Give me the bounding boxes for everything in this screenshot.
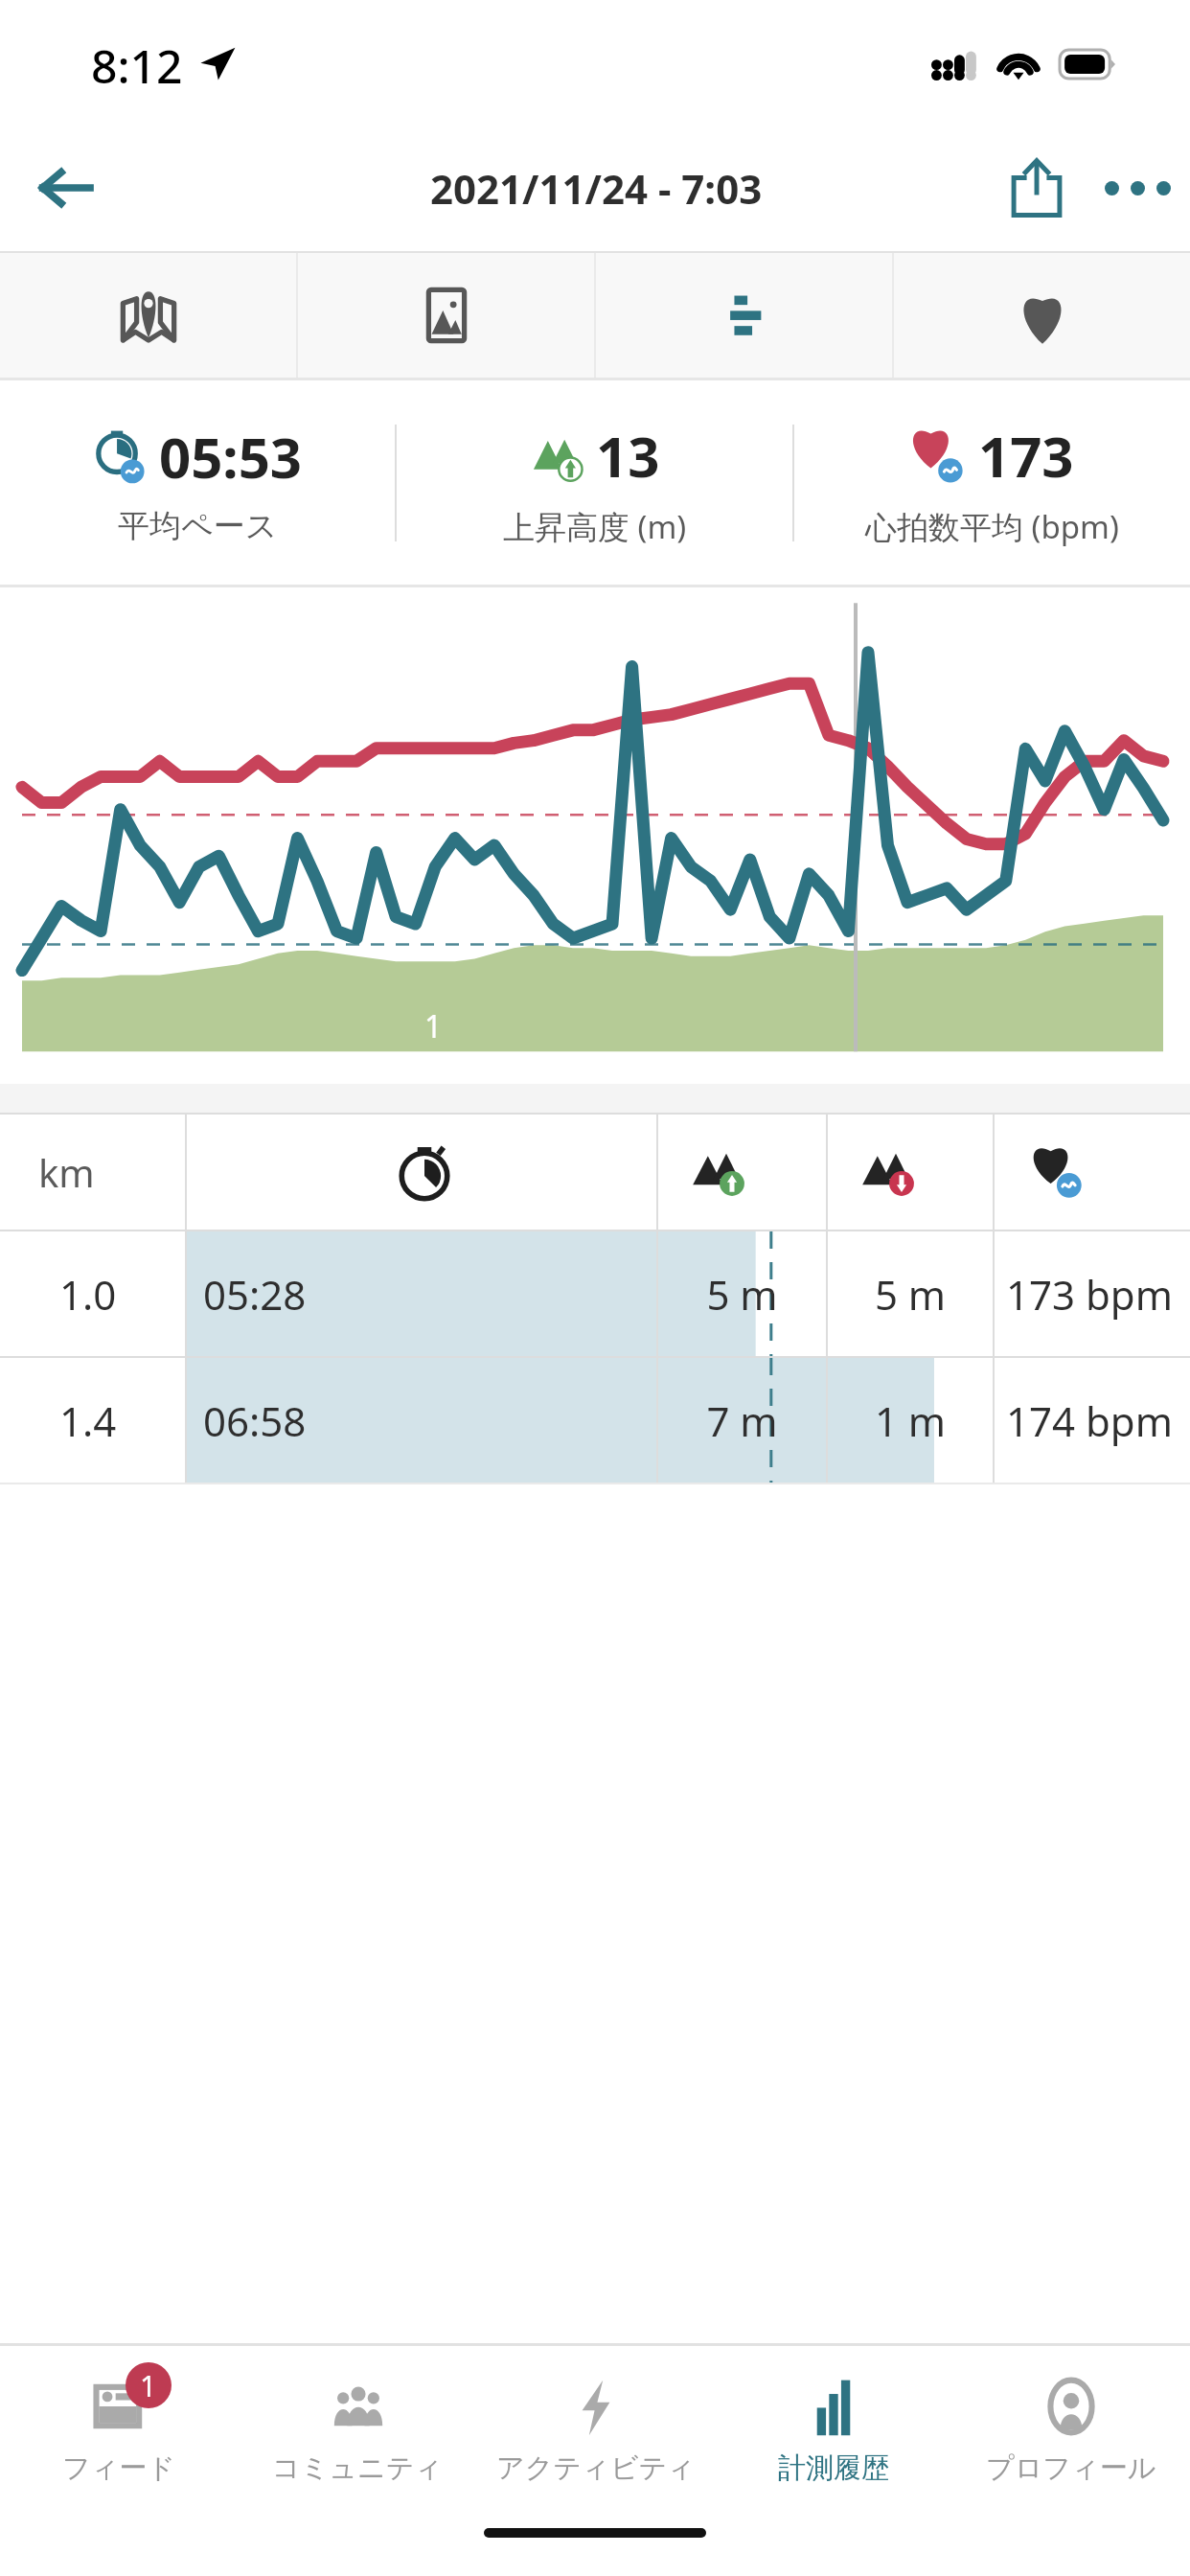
- button[interactable]: 1.0: [0, 1231, 1190, 1356]
- staticText: 1: [424, 1005, 443, 1047]
- staticText: 174 bpm: [994, 1393, 1185, 1448]
- staticText: 06:58: [203, 1393, 307, 1448]
- button[interactable]: Graph: [596, 253, 892, 378]
- staticText: 05:53: [159, 419, 303, 494]
- staticText: 計測履歴: [778, 2450, 889, 2486]
- button[interactable]: 173: [794, 380, 1190, 585]
- button[interactable]: コミュニティ: [239, 2346, 477, 2511]
- staticText: 心拍数平均 (bpm): [865, 505, 1119, 548]
- button[interactable]: Map: [0, 253, 296, 378]
- button[interactable]: 計測履歴: [715, 2346, 952, 2511]
- button[interactable]: Share: [989, 140, 1085, 236]
- button[interactable]: More options: [1085, 135, 1190, 241]
- button[interactable]: Heart rate: [894, 253, 1190, 378]
- staticText: コミュニティ: [272, 2450, 444, 2486]
- button[interactable]: 05:53: [0, 380, 395, 585]
- staticText: プロフィール: [986, 2450, 1156, 2486]
- staticText: 05:28: [203, 1267, 307, 1322]
- button[interactable]: Photos: [298, 253, 594, 378]
- button[interactable]: 1: [0, 2346, 239, 2511]
- staticText: 13: [596, 418, 660, 494]
- staticText: 5 m: [657, 1267, 827, 1322]
- staticText: 1.0: [59, 1267, 117, 1322]
- staticText: 1.4: [59, 1393, 117, 1448]
- staticText: フィード: [62, 2450, 176, 2486]
- button[interactable]: 1: [0, 587, 1190, 1084]
- button[interactable]: プロフィール: [952, 2346, 1190, 2511]
- staticText: 上昇高度 (m): [503, 505, 687, 548]
- staticText: 8:12: [91, 34, 183, 97]
- staticText: 173: [978, 418, 1074, 494]
- button[interactable]: アクティビティ: [477, 2346, 715, 2511]
- staticText: 7 m: [657, 1393, 827, 1448]
- button[interactable]: 1.4: [0, 1358, 1190, 1483]
- staticText: アクティビティ: [496, 2450, 696, 2486]
- staticText: 2021/11/24 - 7:03: [430, 161, 763, 216]
- staticText: 1 m: [827, 1393, 994, 1448]
- staticText: 173 bpm: [994, 1267, 1185, 1322]
- staticText: 平均ペース: [118, 506, 278, 546]
- staticText: km: [38, 1146, 95, 1198]
- staticText: 1: [140, 2366, 157, 2405]
- button[interactable]: Back: [19, 142, 111, 234]
- staticText: 5 m: [827, 1267, 994, 1322]
- button[interactable]: 13: [397, 380, 792, 585]
